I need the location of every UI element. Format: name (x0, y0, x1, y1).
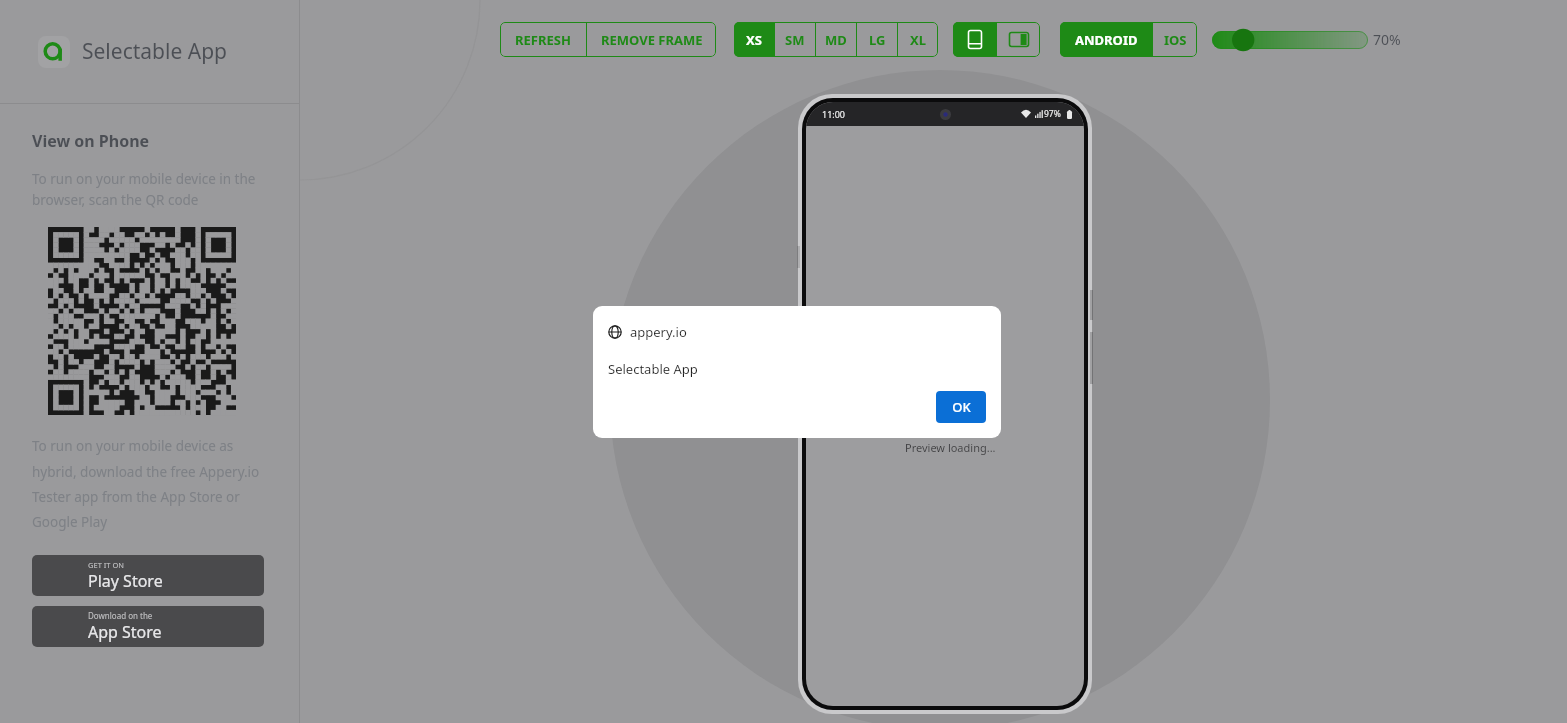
button[interactable]: Tablet preview (997, 22, 1040, 57)
button[interactable]: LG (857, 22, 897, 57)
staticText: GET IT ON (88, 560, 124, 570)
button[interactable]: ANDROID (1060, 22, 1152, 57)
staticText: App Store (88, 621, 162, 643)
button[interactable]: IOS (1153, 22, 1197, 57)
staticText: XS (746, 31, 762, 49)
button[interactable]: XL (898, 22, 938, 57)
staticText: Preview loading... (905, 440, 996, 455)
staticText: SM (785, 31, 805, 49)
staticText: XL (910, 31, 926, 49)
button[interactable] (1212, 31, 1368, 49)
staticText: View on Phone (32, 130, 150, 152)
staticText: IOS (1164, 31, 1187, 49)
staticText: OK (952, 398, 971, 416)
staticText: To run on your mobile device in the brow… (32, 170, 256, 209)
staticText: 97% (1044, 108, 1061, 120)
button[interactable]: GET IT ON (32, 555, 264, 596)
button[interactable]: Phone preview (953, 22, 996, 57)
staticText: 70% (1373, 30, 1401, 49)
button[interactable]: OK (936, 391, 986, 423)
staticText: Selectable App (608, 360, 698, 378)
staticText: REMOVE FRAME (601, 31, 703, 49)
staticText: REFRESH (515, 31, 571, 49)
button[interactable]: REMOVE FRAME (587, 22, 716, 57)
staticText: Selectable App (82, 37, 227, 66)
staticText: LG (869, 31, 886, 49)
button[interactable]: XS (734, 22, 774, 57)
staticText: appery.io (630, 323, 687, 341)
staticText: Play Store (88, 570, 163, 592)
button[interactable]: Download on the (32, 606, 264, 647)
button[interactable]: SM (775, 22, 815, 57)
staticText: MD (825, 31, 847, 49)
staticText: To run on your mobile device as hybrid, … (32, 437, 260, 531)
button[interactable]: MD (816, 22, 856, 57)
button[interactable]: REFRESH (500, 22, 586, 57)
staticText: ANDROID (1075, 31, 1138, 49)
staticText: Download on the (88, 610, 153, 621)
staticText: 11:00 (822, 108, 846, 120)
